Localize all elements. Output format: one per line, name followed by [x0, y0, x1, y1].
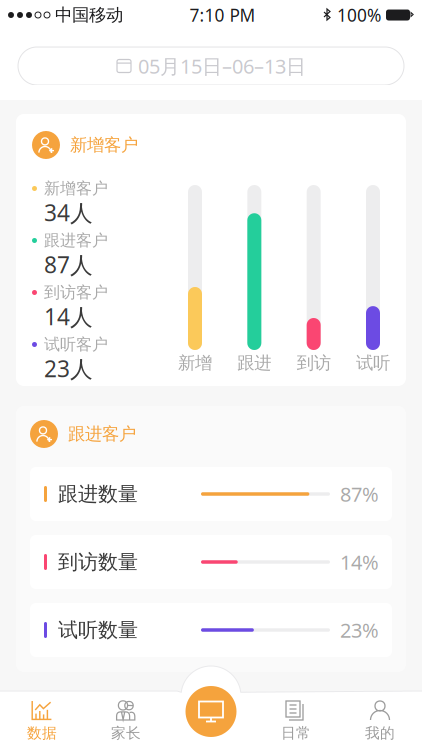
button[interactable]: 到访数量	[30, 535, 392, 589]
staticText: 到访数量	[58, 550, 138, 574]
staticText: 7:10 PM	[189, 3, 255, 26]
staticText: 87人	[44, 249, 93, 279]
button[interactable]: 数据	[0, 691, 84, 750]
staticText: 14人	[44, 301, 93, 331]
staticText: 日常	[281, 724, 311, 742]
staticText: 跟进数量	[58, 482, 138, 506]
staticText: 我的	[365, 724, 395, 742]
staticText: 中国移动	[50, 4, 123, 26]
staticText: 34人	[44, 197, 93, 227]
staticText: 14%	[340, 549, 379, 575]
button[interactable]: 我的	[338, 691, 422, 750]
staticText: 新增	[178, 352, 212, 374]
staticText: 新增客户	[44, 179, 108, 198]
staticText: 新增客户	[70, 134, 138, 156]
staticText: 跟进客户	[68, 423, 136, 445]
staticText: 到访客户	[44, 283, 108, 302]
button[interactable]: 日常	[254, 691, 338, 750]
button[interactable]: 跟进数量	[30, 467, 392, 521]
staticText: 05月15日–06–13日	[138, 53, 306, 79]
staticText: 试听	[356, 352, 390, 374]
staticText: 跟进	[237, 352, 271, 374]
button[interactable]: 试听数量	[30, 603, 392, 657]
staticText: 100%	[332, 3, 386, 26]
staticText: 试听数量	[58, 618, 138, 642]
staticText: 跟进客户	[44, 231, 108, 250]
staticText: 数据	[27, 724, 57, 742]
staticText: 试听客户	[44, 335, 108, 354]
staticText: 23%	[340, 617, 379, 643]
staticText: 到访	[297, 352, 331, 374]
staticText: 23人	[44, 353, 93, 383]
staticText: 87%	[340, 481, 379, 507]
button[interactable]: 05月15日–06–13日	[18, 47, 404, 85]
button[interactable]: 课堂	[185, 686, 236, 737]
staticText: 家长	[111, 724, 141, 742]
button[interactable]: 家长	[84, 691, 168, 750]
